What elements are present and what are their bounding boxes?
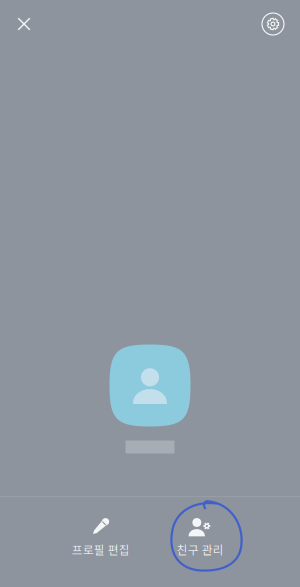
button[interactable]: 프로필 편집 [51,497,150,587]
button[interactable]: 친구 관리 [150,497,250,587]
button[interactable]: Close [2,2,46,46]
staticText: 친구 관리 [177,541,224,558]
staticText: 프로필 편집 [72,541,130,558]
button[interactable]: Settings [251,2,295,46]
